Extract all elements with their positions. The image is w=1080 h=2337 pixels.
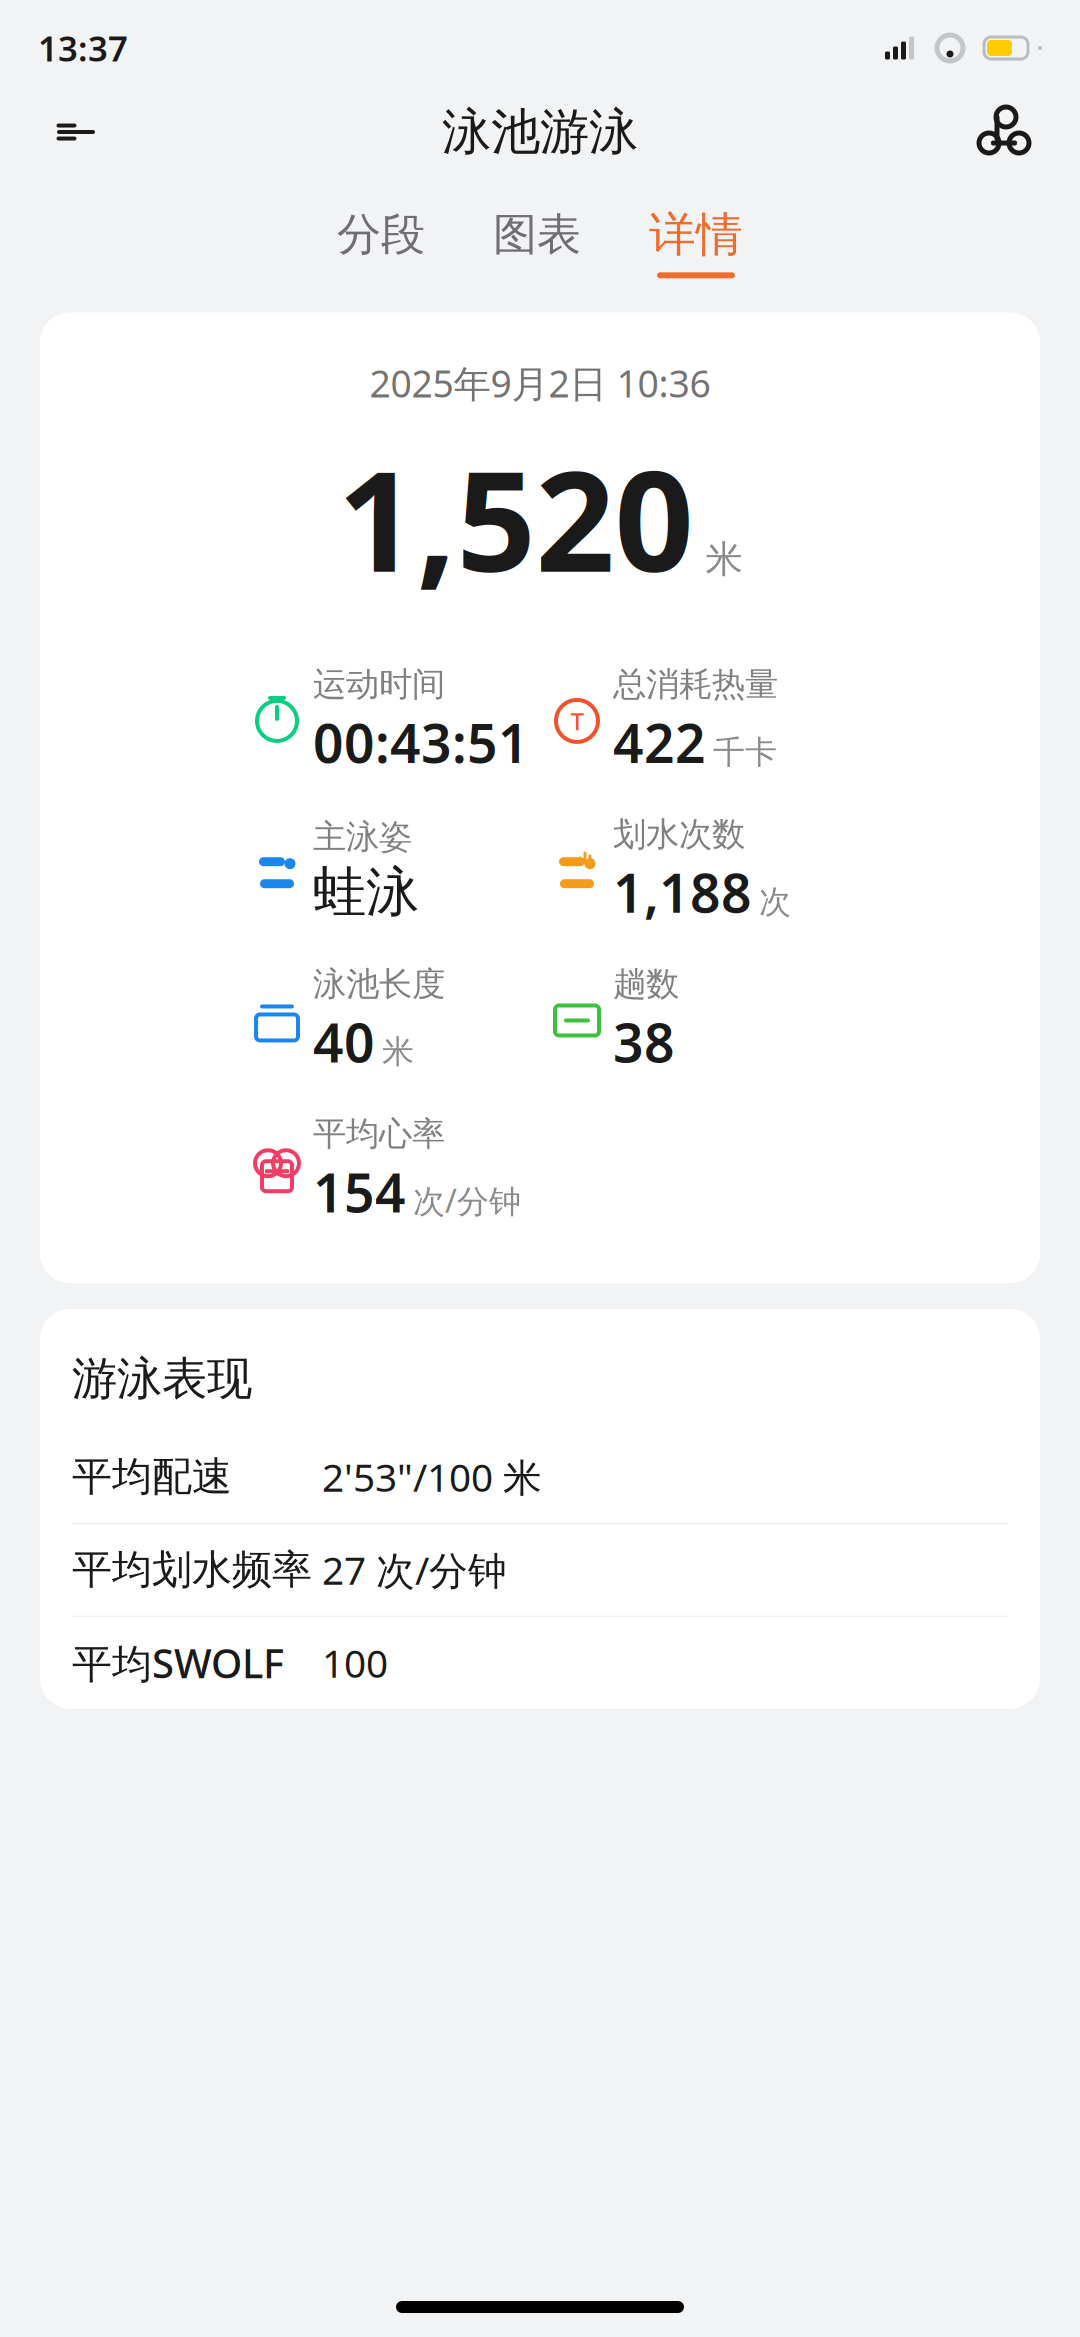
staticText: 38	[613, 1006, 675, 1077]
staticText: 422	[613, 707, 706, 778]
staticText: 1,188	[613, 857, 752, 928]
staticText: 千卡	[713, 733, 777, 772]
staticText: 平均划水频率	[72, 1545, 312, 1594]
staticText: 划水次数	[613, 814, 745, 855]
staticText: 2'53"/100 米	[322, 1451, 542, 1502]
staticText: 13:37	[38, 25, 128, 71]
staticText: 40	[313, 1006, 375, 1077]
staticText: 泳池游泳	[442, 102, 638, 162]
staticText: 次/分钟	[413, 1179, 521, 1222]
staticText: 米	[705, 536, 742, 582]
staticText: 100	[322, 1637, 388, 1688]
staticText: 泳池长度	[313, 964, 445, 1004]
button[interactable]: 图表	[485, 208, 589, 277]
staticText: 00:43:51	[313, 707, 529, 778]
button[interactable]: 详情	[641, 206, 751, 278]
staticText: 游泳表现	[72, 1351, 252, 1407]
staticText: 图表	[493, 208, 581, 262]
staticText: 2025年9月2日 10:36	[369, 358, 710, 408]
staticText: 米	[382, 1032, 414, 1072]
button[interactable]: 返回	[30, 86, 122, 178]
staticText: 蛙泳	[313, 859, 419, 925]
staticText: 详情	[649, 206, 743, 263]
staticText: 154	[313, 1156, 406, 1227]
button[interactable]: 分段	[329, 208, 433, 277]
staticText: 趟数	[613, 964, 679, 1004]
staticText: 平均SWOLF	[72, 1636, 284, 1689]
staticText: 分段	[337, 208, 425, 262]
staticText: 运动时间	[313, 664, 445, 705]
staticText: 次	[759, 882, 791, 922]
staticText: 1,520	[337, 426, 693, 610]
staticText: 主泳姿	[313, 816, 412, 857]
staticText: 27 次/分钟	[322, 1544, 507, 1595]
button[interactable]: 分享	[958, 86, 1050, 178]
staticText: T	[570, 705, 583, 737]
staticText: 平均配速	[72, 1452, 232, 1501]
staticText: 总消耗热量	[613, 664, 778, 705]
staticText: 平均心率	[313, 1113, 445, 1154]
